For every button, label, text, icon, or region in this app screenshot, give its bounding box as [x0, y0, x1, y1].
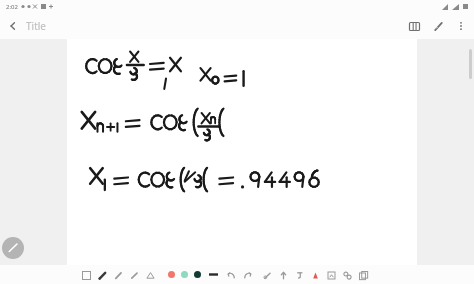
- button[interactable]: Stroke width: [207, 268, 220, 281]
- button[interactable]: Color: [178, 268, 191, 281]
- button[interactable]: Insert: [275, 267, 291, 283]
- button[interactable]: More options: [450, 15, 472, 37]
- button[interactable]: Copy: [355, 267, 371, 283]
- button[interactable]: Lasso: [259, 267, 275, 283]
- button[interactable]: View mode: [402, 14, 426, 38]
- button[interactable]: Edit: [2, 237, 24, 259]
- button[interactable]: Color: [165, 268, 178, 281]
- button[interactable]: Select: [78, 267, 94, 283]
- button[interactable]: Color: [191, 268, 204, 281]
- button[interactable]: Attach: [426, 14, 450, 38]
- button[interactable]: Undo: [223, 267, 239, 283]
- button[interactable]: Link: [339, 267, 355, 283]
- button[interactable]: Back: [0, 13, 26, 39]
- button[interactable]: Image: [323, 267, 339, 283]
- button[interactable]: Shapes: [142, 267, 158, 283]
- button[interactable]: Text: [291, 267, 307, 283]
- staticText: 2:02: [6, 3, 18, 11]
- button[interactable]: Eraser: [126, 267, 142, 283]
- staticText: Title: [26, 19, 46, 33]
- button[interactable]: Redo: [239, 267, 255, 283]
- button[interactable]: Marker: [307, 267, 323, 283]
- button[interactable]: Pen: [94, 267, 110, 283]
- button[interactable]: Highlighter: [110, 267, 126, 283]
